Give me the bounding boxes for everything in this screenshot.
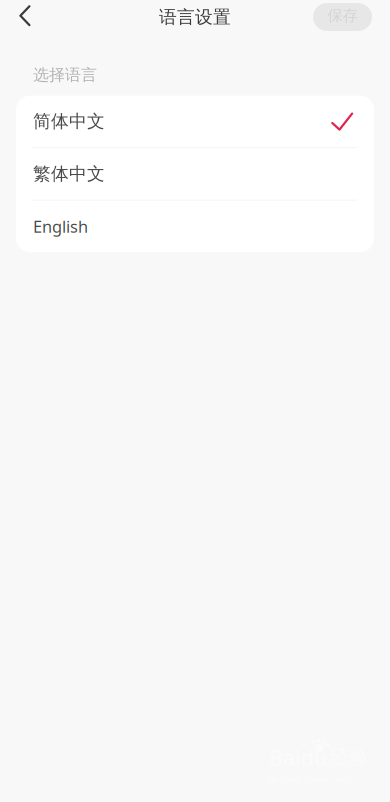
staticText: 保存 [327,6,357,25]
staticText: 简体中文 [33,110,105,132]
button[interactable]: 保存 [313,3,372,31]
button[interactable]: Back [0,2,50,32]
staticText: 繁体中文 [33,163,105,185]
button[interactable]: 繁体中文 [16,148,374,201]
staticText: 选择语言 [33,65,97,85]
staticText: 语言设置 [159,6,231,28]
button[interactable]: English [16,201,374,252]
button[interactable]: 简体中文 [16,96,374,148]
staticText: English [33,215,88,237]
